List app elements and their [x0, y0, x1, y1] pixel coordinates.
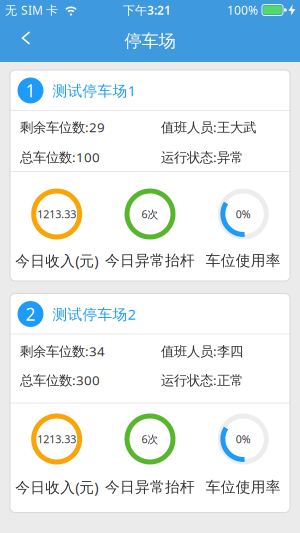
staticText: 测试停车场2: [52, 304, 135, 324]
staticText: 1: [25, 79, 35, 102]
staticText: 2: [25, 302, 35, 325]
staticText: 值班人员:李四: [161, 342, 243, 360]
button[interactable]: Back: [0, 20, 31, 62]
staticText: 1213.33: [37, 432, 76, 446]
button[interactable]: 2: [10, 293, 290, 512]
staticText: 下午3:21: [123, 2, 171, 18]
staticText: 无 SIM 卡: [5, 2, 58, 18]
staticText: 今日收入(元): [15, 251, 98, 270]
staticText: 值班人员:王大武: [161, 118, 256, 136]
staticText: 0%: [236, 207, 251, 221]
staticText: 今日收入(元): [15, 477, 98, 497]
button[interactable]: 1: [10, 70, 290, 281]
staticText: 今日异常抬杆: [105, 251, 195, 269]
staticText: 6次: [141, 207, 158, 221]
staticText: 停车场: [124, 30, 175, 52]
staticText: 100%: [227, 2, 258, 18]
staticText: 测试停车场1: [52, 81, 135, 100]
staticText: 总车位数:100: [20, 148, 100, 166]
staticText: 1213.33: [37, 207, 76, 221]
staticText: 车位使用率: [206, 478, 281, 496]
staticText: 6次: [141, 432, 158, 446]
staticText: 今日异常抬杆: [105, 478, 195, 496]
staticText: 总车位数:300: [20, 371, 100, 389]
staticText: 车位使用率: [206, 251, 281, 269]
staticText: 剩余车位数:34: [20, 342, 105, 360]
staticText: 0%: [236, 432, 251, 446]
staticText: 剩余车位数:29: [20, 118, 105, 136]
staticText: 运行状态:正常: [161, 371, 243, 389]
staticText: 运行状态:异常: [161, 148, 243, 166]
